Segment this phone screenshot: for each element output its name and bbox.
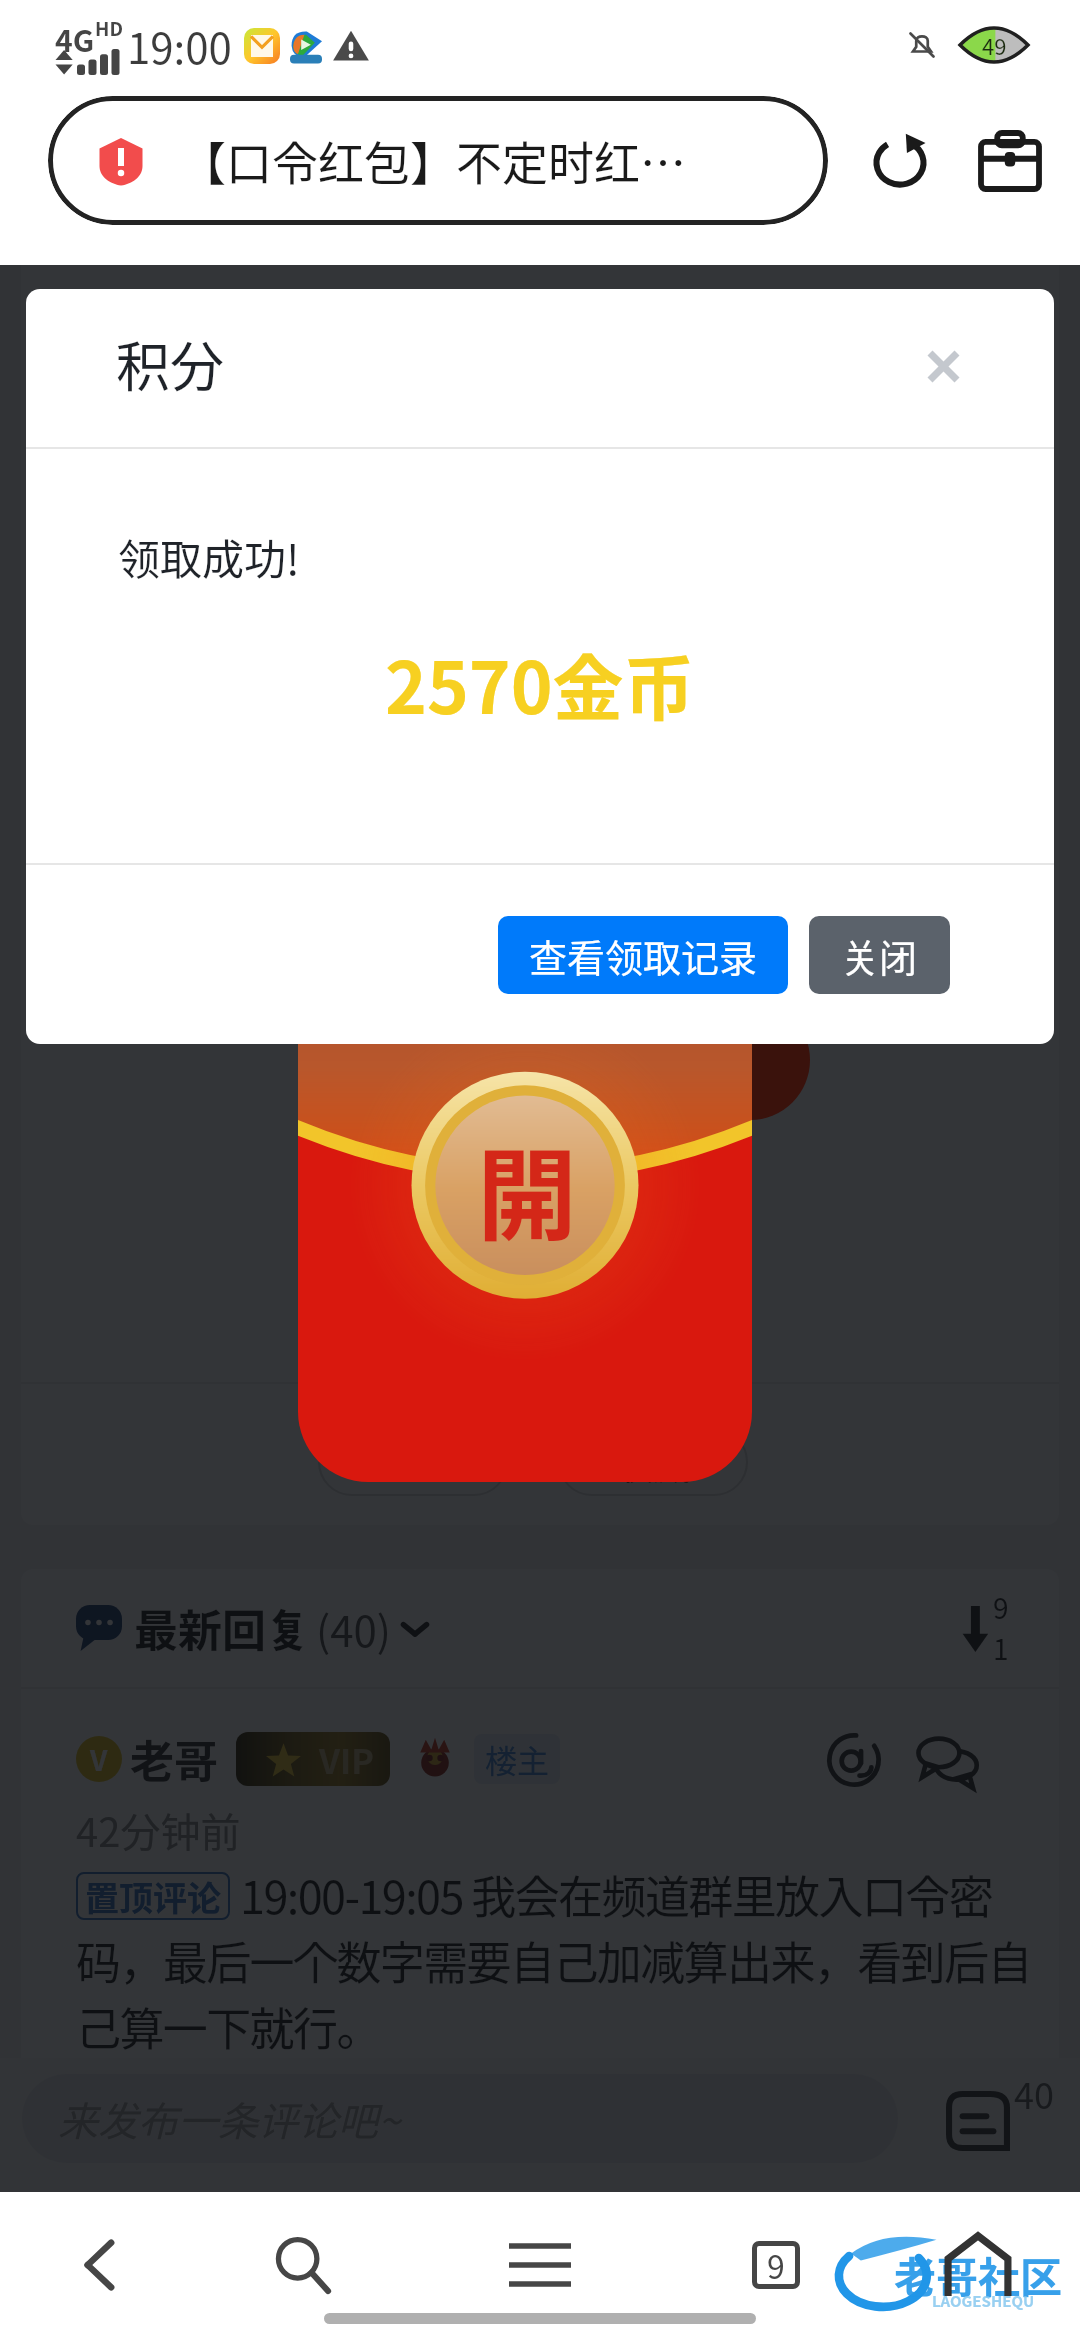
button[interactable]: Red packet (298, 880, 752, 1482)
staticText: HD (95, 14, 123, 42)
button[interactable]: Comments (946, 2091, 1012, 2157)
staticText: 己算一下就行。 (76, 1994, 380, 2059)
staticText: 领取成功! (118, 526, 300, 587)
button[interactable]: Tools (966, 96, 1054, 225)
staticText: 【口令红包】不定时红… (180, 127, 686, 194)
staticText: 码，最后一个数字需要自己加减算出来，看到后自 (76, 1928, 1031, 1993)
staticText: 积分 (116, 324, 224, 402)
staticText: 2570金币 (385, 632, 695, 735)
staticText: 老哥社区 (894, 2244, 1063, 2305)
button[interactable]: 【口令红包】不定时红… (48, 96, 828, 225)
button[interactable]: Mention (824, 1730, 884, 1790)
staticText: 关闭 (841, 928, 918, 983)
staticText: 1 (993, 1628, 1009, 1669)
staticText: 最新回复 (134, 1596, 310, 1660)
staticText: 9 (993, 1587, 1009, 1628)
button[interactable]: Menu (470, 2210, 610, 2320)
staticText: 置顶评论 (85, 1872, 221, 1920)
button[interactable]: 关闭 (809, 916, 950, 994)
button[interactable]: Close (907, 330, 979, 402)
staticText: 開 (477, 1116, 577, 1261)
staticText: 19:00-19:05 我会在频道群里放入口令密 (240, 1862, 993, 1927)
staticText: 49 (982, 29, 1007, 61)
staticText: 来发布一条评论吧~ (58, 2090, 401, 2148)
staticText: VIP (319, 1735, 374, 1784)
staticText: 9 (767, 2242, 785, 2288)
button[interactable]: Home (908, 2210, 1048, 2320)
button[interactable]: Like (318, 1428, 508, 1496)
staticText: 4G (55, 17, 95, 60)
button[interactable]: Search (232, 2210, 372, 2320)
button[interactable]: Reload (856, 96, 944, 225)
staticText: (40) (316, 1598, 392, 1659)
staticText: 40 (1014, 2067, 1054, 2119)
staticText: LAOGESHEQU (932, 2290, 1035, 2312)
button[interactable]: Reply (914, 1728, 980, 1794)
staticText: 42分钟前 (76, 1801, 241, 1859)
button[interactable]: Sort (961, 1587, 1009, 1669)
staticText: 老哥 (130, 1727, 218, 1791)
staticText: 19:00 (127, 15, 232, 76)
staticText: V (90, 1739, 108, 1780)
staticText: 收藏 (615, 1435, 692, 1490)
staticText: 楼主 (485, 1736, 550, 1782)
button[interactable]: Back (30, 2210, 170, 2320)
staticText: 查看领取记录 (529, 928, 758, 983)
button[interactable]: 收藏 (558, 1428, 748, 1496)
button[interactable]: Tabs (706, 2210, 846, 2320)
button[interactable]: 查看领取记录 (498, 916, 788, 994)
